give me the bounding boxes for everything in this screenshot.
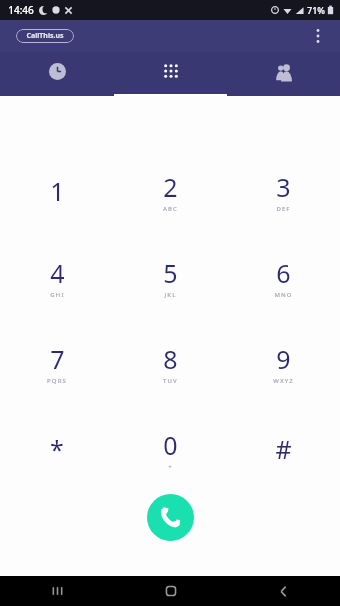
button[interactable]: 8: [114, 320, 227, 406]
button[interactable]: *: [0, 406, 114, 492]
staticText: 2: [163, 170, 178, 204]
button[interactable]: 3: [227, 148, 340, 234]
staticText: PQRS: [47, 377, 67, 385]
button[interactable]: 7: [0, 320, 114, 406]
button[interactable]: Back: [227, 576, 340, 606]
staticText: TUV: [163, 377, 178, 385]
button[interactable]: #: [227, 406, 340, 492]
staticText: 3: [276, 170, 291, 204]
staticText: +: [168, 463, 173, 471]
button[interactable]: 5: [114, 234, 227, 320]
button[interactable]: Call: [147, 494, 194, 541]
staticText: 1: [50, 174, 65, 208]
staticText: 7: [50, 342, 65, 376]
staticText: MNO: [274, 291, 293, 299]
button[interactable]: Contacts: [227, 52, 340, 96]
button[interactable]: 2: [114, 148, 227, 234]
staticText: 6: [276, 256, 291, 290]
button[interactable]: 4: [0, 234, 114, 320]
staticText: ABC: [163, 205, 178, 213]
staticText: WXYZ: [273, 377, 294, 385]
staticText: DEF: [276, 205, 291, 213]
staticText: 9: [276, 342, 291, 376]
staticText: 0: [163, 428, 178, 462]
button[interactable]: Recents: [0, 52, 114, 96]
staticText: 71%: [307, 4, 325, 16]
button[interactable]: Home: [114, 576, 227, 606]
button[interactable]: 9: [227, 320, 340, 406]
staticText: 4: [50, 256, 65, 290]
staticText: 5: [163, 256, 178, 290]
staticText: JKL: [164, 291, 177, 299]
button[interactable]: 1: [0, 148, 114, 234]
staticText: #: [275, 432, 292, 466]
button[interactable]: 6: [227, 234, 340, 320]
staticText: 8: [163, 342, 178, 376]
button[interactable]: Keypad: [114, 52, 227, 96]
button[interactable]: More options: [306, 24, 330, 48]
staticText: 14:46: [8, 3, 34, 17]
button[interactable]: CallThis.us: [16, 29, 74, 43]
button[interactable]: Recent apps: [0, 576, 114, 606]
button[interactable]: 0: [114, 406, 227, 492]
staticText: CallThis.us: [26, 31, 64, 41]
staticText: GHI: [50, 291, 65, 299]
staticText: *: [50, 432, 64, 466]
